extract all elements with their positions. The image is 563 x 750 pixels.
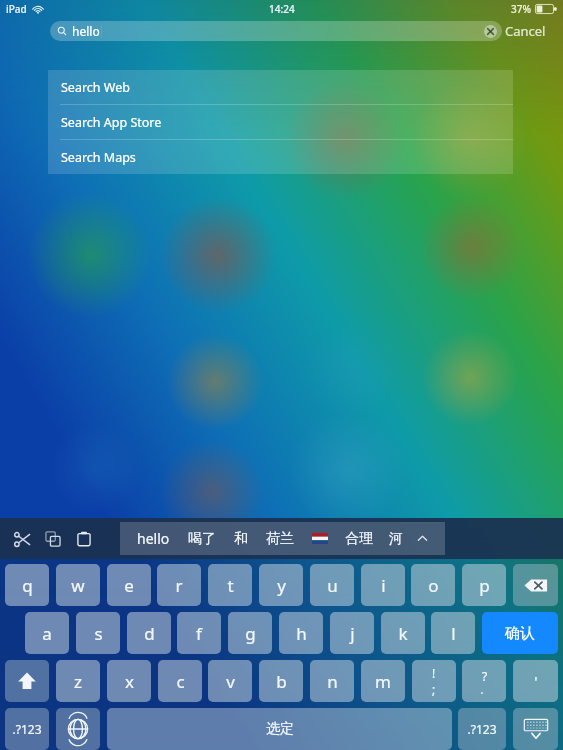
button[interactable]: o: [411, 564, 455, 606]
staticText: Search Maps: [61, 149, 136, 166]
button[interactable]: v: [208, 660, 252, 702]
button[interactable]: u: [310, 564, 354, 606]
staticText: ': [534, 671, 538, 691]
staticText: .?123: [12, 721, 42, 737]
button[interactable]: ?: [462, 660, 506, 702]
button[interactable]: y: [259, 564, 303, 606]
button[interactable]: Search Maps: [48, 140, 513, 174]
button[interactable]: c: [158, 660, 202, 702]
staticText: y: [277, 574, 286, 597]
staticText: 河: [389, 530, 403, 548]
button[interactable]: d: [127, 612, 171, 654]
button[interactable]: Cut: [9, 526, 35, 552]
staticText: l: [451, 622, 456, 645]
button[interactable]: hello: [50, 21, 502, 41]
staticText: z: [74, 670, 82, 693]
staticText: ?: [482, 668, 488, 684]
staticText: s: [94, 622, 103, 645]
staticText: ;: [432, 681, 436, 697]
button[interactable]: x: [107, 660, 151, 702]
button[interactable]: !: [412, 660, 456, 702]
staticText: k: [398, 622, 408, 645]
button[interactable]: 合理: [337, 522, 381, 555]
button[interactable]: Next keyboard: [56, 708, 100, 750]
button[interactable]: 河: [381, 522, 411, 555]
button[interactable]: 确认: [482, 612, 558, 654]
button[interactable]: hello: [128, 522, 179, 555]
button[interactable]: Shift: [5, 660, 49, 702]
button[interactable]: h: [279, 612, 323, 654]
button[interactable]: b: [259, 660, 303, 702]
button[interactable]: Search Web: [48, 70, 513, 104]
staticText: 荷兰: [266, 530, 294, 548]
button[interactable]: .?123: [458, 708, 506, 750]
staticText: r: [175, 574, 183, 597]
button[interactable]: k: [381, 612, 425, 654]
staticText: 和: [234, 530, 248, 548]
staticText: n: [327, 670, 338, 693]
staticText: !: [432, 665, 436, 681]
staticText: 确认: [505, 624, 535, 643]
button[interactable]: t: [208, 564, 252, 606]
staticText: i: [381, 574, 386, 597]
staticText: m: [375, 670, 391, 693]
button[interactable]: Backspace: [513, 564, 558, 606]
staticText: j: [350, 622, 355, 645]
button[interactable]: ': [513, 660, 558, 702]
staticText: v: [226, 670, 235, 693]
button[interactable]: Clear text: [484, 25, 497, 38]
staticText: 喝了: [188, 530, 216, 548]
button[interactable]: 选定: [107, 708, 452, 750]
button[interactable]: .?123: [5, 708, 49, 750]
staticText: .?123: [467, 721, 497, 737]
button[interactable]: 荷兰: [257, 522, 303, 555]
button[interactable]: n: [310, 660, 354, 702]
staticText: hello: [137, 529, 170, 548]
button[interactable]: i: [361, 564, 405, 606]
staticText: c: [176, 670, 185, 693]
button[interactable]: a: [25, 612, 69, 654]
staticText: 37%: [511, 2, 531, 16]
staticText: h: [296, 622, 307, 645]
button[interactable]: e: [107, 564, 151, 606]
button[interactable]: s: [76, 612, 120, 654]
staticText: Search App Store: [61, 114, 162, 131]
button[interactable]: f: [177, 612, 221, 654]
staticText: 。: [480, 684, 489, 695]
staticText: f: [196, 622, 202, 645]
staticText: q: [22, 574, 33, 597]
staticText: 合理: [345, 530, 373, 548]
staticText: a: [42, 622, 52, 645]
button[interactable]: w: [56, 564, 100, 606]
staticText: hello: [72, 23, 100, 39]
staticText: w: [71, 574, 85, 597]
staticText: Search Web: [61, 79, 130, 96]
button[interactable]: p: [462, 564, 506, 606]
button[interactable]: Copy: [40, 526, 66, 552]
staticText: b: [276, 670, 287, 693]
button[interactable]: Hide keyboard: [513, 708, 558, 750]
staticText: o: [428, 574, 439, 597]
button[interactable]: z: [56, 660, 100, 702]
button[interactable]: 喝了: [179, 522, 225, 555]
button[interactable]: 和: [225, 522, 257, 555]
button[interactable]: l: [431, 612, 475, 654]
button[interactable]: q: [5, 564, 49, 606]
button[interactable]: [312, 522, 328, 555]
button[interactable]: g: [228, 612, 272, 654]
staticText: u: [327, 574, 338, 597]
staticText: Cancel: [505, 22, 546, 40]
button[interactable]: r: [157, 564, 201, 606]
staticText: e: [124, 574, 134, 597]
staticText: p: [479, 574, 490, 597]
button[interactable]: m: [361, 660, 405, 702]
button[interactable]: Search App Store: [48, 105, 513, 139]
button[interactable]: Cancel: [505, 20, 557, 42]
button[interactable]: j: [330, 612, 374, 654]
staticText: iPad: [6, 2, 27, 16]
staticText: 选定: [266, 720, 294, 738]
button[interactable]: Expand candidates: [411, 522, 433, 555]
button[interactable]: Paste: [71, 526, 97, 552]
staticText: t: [227, 574, 234, 597]
staticText: d: [144, 622, 155, 645]
